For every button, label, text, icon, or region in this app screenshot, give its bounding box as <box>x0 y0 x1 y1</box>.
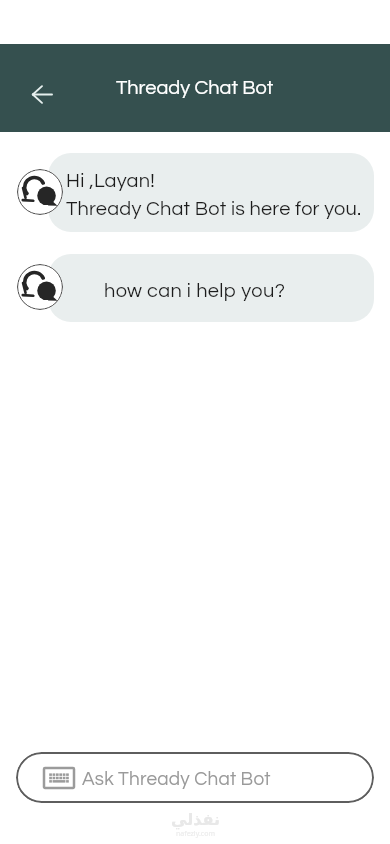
button[interactable]: Hi ,Layan! Thready Chat Bot is here for … <box>48 153 374 232</box>
staticText: how can i help you? <box>104 281 286 302</box>
button[interactable]: Ask Thready Chat Bot <box>16 752 374 803</box>
staticText: Hi ,Layan! Thready Chat Bot is here for … <box>66 171 362 219</box>
staticText: Thready Chat Bot <box>116 78 274 99</box>
button[interactable]: Back <box>18 64 66 112</box>
staticText: Ask Thready Chat Bot <box>82 769 271 789</box>
staticText: نفذلي <box>171 810 220 829</box>
button[interactable]: how can i help you? <box>48 254 374 322</box>
staticText: nafezly.com <box>176 829 215 839</box>
